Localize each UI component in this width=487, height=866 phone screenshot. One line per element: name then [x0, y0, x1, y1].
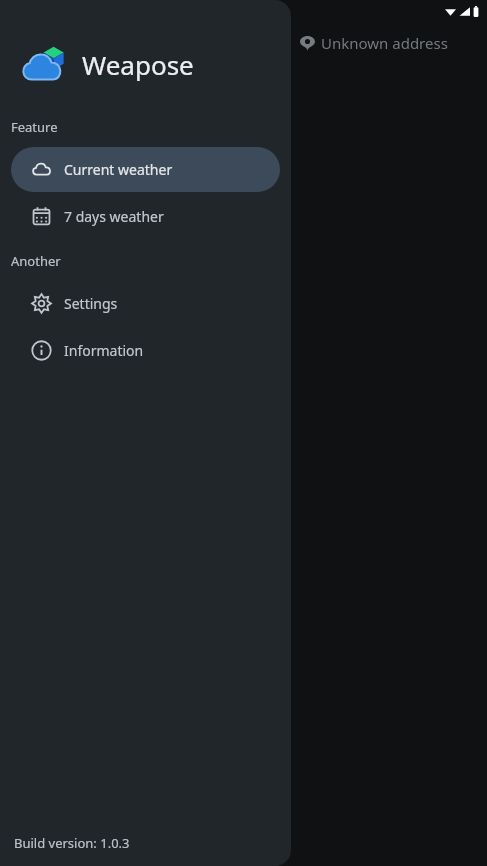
button[interactable]: 7 days weather [11, 194, 280, 239]
staticText: Another [11, 252, 61, 270]
button[interactable]: Current weather [11, 147, 280, 192]
staticText: Information [64, 341, 144, 360]
button[interactable]: Information [11, 328, 280, 373]
staticText: Unknown address [321, 33, 448, 53]
staticText: 7 days weather [64, 207, 164, 226]
button[interactable]: Settings [11, 281, 280, 326]
staticText: Build version: 1.0.3 [14, 834, 130, 852]
staticText: Weapose [82, 47, 194, 82]
staticText: Feature [11, 118, 58, 136]
staticText: Settings [64, 294, 118, 313]
staticText: Current weather [64, 160, 173, 179]
